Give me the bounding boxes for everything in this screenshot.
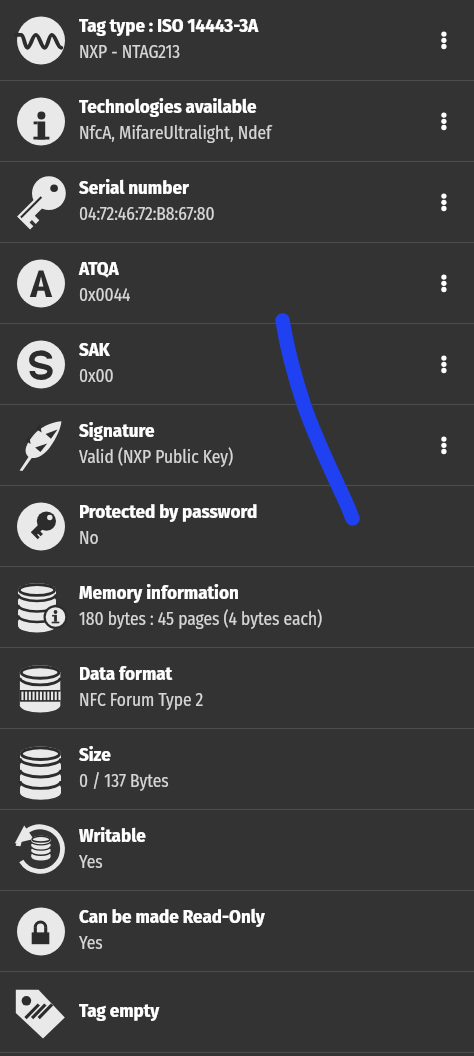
staticText: Protected by password	[79, 500, 258, 523]
staticText: Can be made Read-Only	[79, 905, 265, 928]
staticText: No	[79, 528, 99, 549]
staticText: ATQA	[79, 257, 119, 280]
button[interactable]: More options	[414, 81, 474, 161]
staticText: NFC Forum Type 2	[79, 690, 204, 711]
staticText: Tag empty	[79, 999, 160, 1022]
staticText: Size	[79, 743, 111, 766]
button[interactable]: ATQA	[0, 243, 474, 323]
button[interactable]: Size	[0, 729, 474, 809]
button[interactable]: Protected by password	[0, 486, 474, 566]
staticText: Yes	[79, 852, 103, 873]
button[interactable]: Data format	[0, 648, 474, 728]
button[interactable]: Signature	[0, 405, 474, 485]
staticText: Tag type : ISO 14443-3A	[79, 14, 259, 37]
staticText: 0x0044	[79, 285, 131, 306]
staticText: Technologies available	[79, 95, 257, 118]
staticText: Valid (NXP Public Key)	[79, 447, 234, 468]
staticText: Signature	[79, 419, 155, 442]
button[interactable]: More options	[414, 405, 474, 485]
staticText: Writable	[79, 824, 146, 847]
staticText: 04:72:46:72:B8:67:80	[79, 204, 215, 225]
button[interactable]: SAK	[0, 324, 474, 404]
staticText: 0x00	[79, 366, 114, 387]
staticText: NfcA, MifareUltralight, Ndef	[79, 123, 272, 144]
button[interactable]: Tag empty	[0, 972, 474, 1052]
button[interactable]: Serial number	[0, 162, 474, 242]
staticText: SAK	[79, 338, 110, 361]
button[interactable]: Writable	[0, 810, 474, 890]
staticText: Memory information	[79, 581, 239, 604]
staticText: 0 / 137 Bytes	[79, 771, 169, 792]
staticText: NXP - NTAG213	[79, 42, 181, 63]
button[interactable]: Can be made Read-Only	[0, 891, 474, 971]
button[interactable]: More options	[414, 162, 474, 242]
staticText: Yes	[79, 933, 103, 954]
button[interactable]: Memory information	[0, 567, 474, 647]
button[interactable]: More options	[414, 243, 474, 323]
staticText: Data format	[79, 662, 173, 685]
staticText: 180 bytes : 45 pages (4 bytes each)	[79, 609, 323, 630]
staticText: Serial number	[79, 176, 189, 199]
button[interactable]: More options	[414, 0, 474, 80]
button[interactable]: Technologies available	[0, 81, 474, 161]
button[interactable]: Tag type : ISO 14443-3A	[0, 0, 474, 80]
button[interactable]: More options	[414, 324, 474, 404]
